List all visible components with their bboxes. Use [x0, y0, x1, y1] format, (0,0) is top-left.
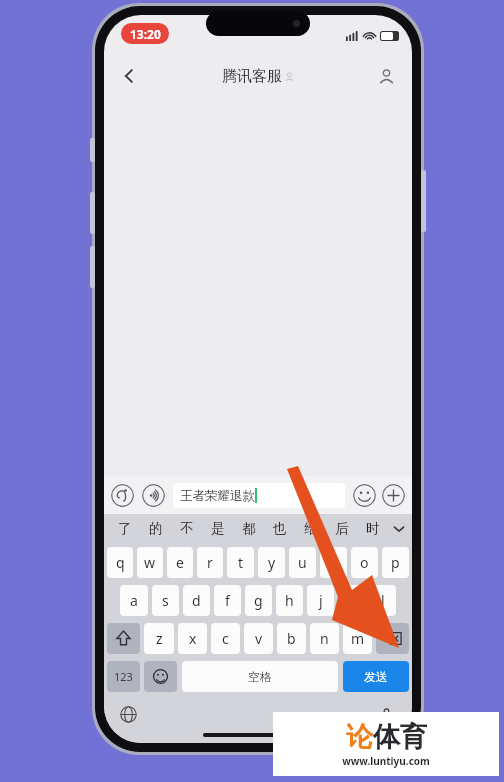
staticText: v	[255, 629, 263, 648]
staticText: r	[207, 553, 213, 572]
button[interactable]: a	[120, 585, 148, 616]
button[interactable]: o	[351, 547, 378, 578]
button[interactable]: w	[137, 547, 163, 578]
button[interactable]: Backspace	[376, 623, 409, 654]
button[interactable]: q	[107, 547, 133, 578]
button[interactable]: i	[320, 547, 347, 578]
button[interactable]: t	[227, 547, 254, 578]
staticText: 是	[211, 520, 225, 537]
button[interactable]: Emoji keyboard	[144, 661, 177, 692]
staticText: u	[298, 553, 307, 572]
button[interactable]: l	[369, 585, 396, 616]
staticText: 也	[273, 520, 287, 537]
button[interactable]: 的	[140, 514, 171, 543]
button[interactable]: 空格	[182, 661, 338, 692]
staticText: y	[268, 553, 276, 572]
staticText: c	[222, 629, 229, 648]
staticText: 王者荣耀退款	[180, 488, 255, 504]
button[interactable]: p	[382, 547, 409, 578]
button[interactable]: u	[289, 547, 316, 578]
button[interactable]: Shift	[107, 623, 140, 654]
staticText: p	[391, 553, 400, 572]
button[interactable]: Sound	[142, 484, 165, 507]
staticText: 给	[304, 520, 318, 537]
staticText: n	[320, 629, 329, 648]
staticText: t	[238, 553, 244, 572]
button[interactable]: 后	[326, 514, 357, 543]
staticText: 时	[366, 520, 380, 537]
staticText: w	[144, 553, 156, 572]
button[interactable]: Voice input	[111, 484, 134, 507]
button[interactable]: Contact info	[370, 60, 402, 92]
staticText: o	[360, 553, 369, 572]
button[interactable]: r	[197, 547, 223, 578]
staticText: 的	[149, 520, 163, 537]
staticText: x	[189, 629, 197, 648]
button[interactable]: f	[214, 585, 241, 616]
staticText: m	[351, 629, 365, 648]
staticText: 不	[180, 520, 194, 537]
button[interactable]: v	[244, 623, 273, 654]
button[interactable]: 给	[295, 514, 326, 543]
button[interactable]: Back	[112, 59, 146, 93]
staticText: 腾讯客服	[222, 67, 282, 86]
button[interactable]: 123	[107, 661, 140, 692]
staticText: f	[225, 591, 230, 610]
staticText: 发送	[364, 669, 388, 684]
staticText: 都	[242, 520, 256, 537]
button[interactable]: 也	[264, 514, 295, 543]
button[interactable]: 都	[233, 514, 264, 543]
button[interactable]: c	[211, 623, 240, 654]
button[interactable]: d	[183, 585, 210, 616]
staticText: 论	[346, 720, 373, 754]
button[interactable]: k	[338, 585, 365, 616]
staticText: a	[130, 591, 138, 610]
staticText: 了	[118, 520, 132, 537]
button[interactable]: More	[382, 484, 405, 507]
button[interactable]: z	[144, 623, 174, 654]
button[interactable]: 不	[171, 514, 202, 543]
button[interactable]: j	[307, 585, 334, 616]
staticText: 13:20	[130, 26, 161, 42]
staticText: l	[381, 591, 385, 610]
button[interactable]: 了	[110, 514, 140, 543]
staticText: e	[176, 553, 184, 572]
button[interactable]: h	[276, 585, 303, 616]
button[interactable]: 王者荣耀退款	[173, 483, 345, 508]
staticText: d	[192, 591, 201, 610]
staticText: z	[156, 629, 163, 648]
staticText: 123	[114, 669, 133, 684]
button[interactable]: 时	[357, 514, 388, 543]
button[interactable]: y	[258, 547, 285, 578]
button[interactable]: 发送	[343, 661, 409, 692]
button[interactable]: s	[152, 585, 179, 616]
button[interactable]: m	[343, 623, 372, 654]
staticText: q	[116, 553, 125, 572]
staticText: s	[162, 591, 169, 610]
button[interactable]: 是	[202, 514, 233, 543]
staticText: www.luntiyu.com	[342, 754, 430, 768]
staticText: 空格	[248, 669, 272, 684]
button[interactable]: e	[167, 547, 193, 578]
staticText: b	[287, 629, 296, 648]
button[interactable]: n	[310, 623, 339, 654]
staticText: 后	[335, 520, 349, 537]
staticText: j	[319, 591, 323, 610]
staticText: h	[285, 591, 294, 610]
staticText: 体育	[373, 720, 427, 754]
button[interactable]: x	[178, 623, 207, 654]
button[interactable]: Change language	[116, 702, 140, 726]
staticText: g	[254, 591, 263, 610]
button[interactable]: Voice	[374, 702, 398, 726]
button[interactable]: Collapse candidates	[388, 514, 410, 543]
button[interactable]: b	[277, 623, 306, 654]
button[interactable]: Emoji	[353, 484, 376, 507]
button[interactable]: g	[245, 585, 272, 616]
